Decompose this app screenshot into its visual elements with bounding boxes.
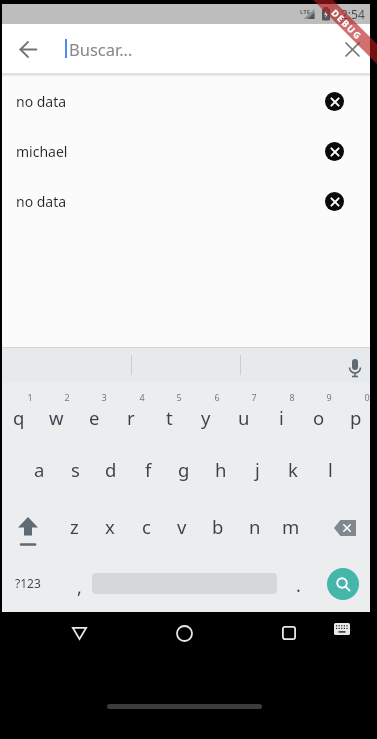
staticText: 4 <box>139 391 145 403</box>
button[interactable]: h <box>203 446 239 492</box>
staticText: 9 <box>326 391 332 403</box>
button[interactable]: v <box>164 503 200 549</box>
staticText: , <box>77 575 82 600</box>
staticText: no data <box>16 192 67 211</box>
staticText: 2 <box>64 391 70 403</box>
button[interactable]: u <box>226 394 262 440</box>
staticText: k <box>288 457 298 482</box>
staticText: m <box>282 514 300 539</box>
staticText: j <box>255 457 260 482</box>
button[interactable] <box>324 505 366 551</box>
staticText: g <box>178 457 190 482</box>
button[interactable]: d <box>93 446 129 492</box>
button[interactable]: s <box>57 446 93 492</box>
button[interactable]: m <box>273 503 309 549</box>
button[interactable] <box>267 611 311 655</box>
staticText: z <box>70 514 79 539</box>
staticText: Buscar... <box>69 38 133 60</box>
button[interactable]: no data <box>2 76 370 126</box>
staticText: c <box>142 514 151 539</box>
staticText: y <box>201 405 211 430</box>
button[interactable]: l <box>312 446 348 492</box>
staticText: 2:54 <box>341 6 365 22</box>
staticText: n <box>249 514 261 539</box>
staticText: LTE <box>300 8 311 16</box>
staticText: q <box>13 405 25 430</box>
staticText: t <box>166 405 173 430</box>
staticText: a <box>34 457 45 482</box>
button[interactable]: k <box>275 446 311 492</box>
button[interactable]: g <box>166 446 202 492</box>
button[interactable] <box>57 611 101 655</box>
staticText: u <box>238 405 250 430</box>
button[interactable]: y <box>188 394 224 440</box>
staticText: v <box>177 514 187 539</box>
staticText: w <box>49 405 64 430</box>
button[interactable]: f <box>130 446 166 492</box>
staticText: l <box>328 457 333 482</box>
button[interactable] <box>10 31 46 67</box>
staticText: 5 <box>176 391 182 403</box>
staticText: 6 <box>214 391 220 403</box>
staticText: x <box>105 514 115 539</box>
staticText: s <box>71 457 80 482</box>
button[interactable] <box>313 80 355 122</box>
button[interactable]: e <box>76 394 112 440</box>
button[interactable]: q <box>1 394 37 440</box>
button[interactable]: w <box>38 394 74 440</box>
button[interactable] <box>327 568 359 600</box>
button[interactable]: x <box>92 503 128 549</box>
button[interactable]: michael <box>2 126 370 176</box>
button[interactable]: a <box>21 446 57 492</box>
button[interactable]: t <box>151 394 187 440</box>
button[interactable]: j <box>239 446 275 492</box>
button[interactable]: c <box>128 503 164 549</box>
staticText: no data <box>16 92 67 111</box>
staticText: i <box>279 405 284 430</box>
staticText: michael <box>16 142 68 161</box>
button[interactable] <box>340 353 370 385</box>
staticText: b <box>212 514 224 539</box>
button[interactable] <box>8 509 48 555</box>
staticText: . <box>296 573 301 598</box>
button[interactable]: no data <box>2 176 370 226</box>
staticText: e <box>89 405 100 430</box>
button[interactable]: ?123 <box>6 561 50 605</box>
button[interactable]: p <box>338 394 374 440</box>
button[interactable]: z <box>56 503 92 549</box>
button[interactable] <box>322 609 362 649</box>
staticText: ?123 <box>15 575 41 591</box>
staticText: 7 <box>251 391 257 403</box>
staticText: 1 <box>27 391 33 403</box>
staticText: o <box>313 405 325 430</box>
button[interactable]: r <box>113 394 149 440</box>
button[interactable] <box>313 180 355 222</box>
staticText: 8 <box>289 391 295 403</box>
staticText: h <box>215 457 227 482</box>
button[interactable]: i <box>263 394 299 440</box>
button[interactable]: n <box>237 503 273 549</box>
staticText: p <box>350 405 362 430</box>
button[interactable]: o <box>301 394 337 440</box>
staticText: r <box>127 405 135 430</box>
staticText: DEBUG <box>329 6 365 42</box>
button[interactable]: b <box>200 503 236 549</box>
staticText: 0 <box>364 391 370 403</box>
button[interactable] <box>333 30 371 68</box>
button[interactable] <box>313 130 355 172</box>
staticText: f <box>145 457 152 482</box>
staticText: 3 <box>101 391 107 403</box>
staticText: d <box>105 457 117 482</box>
button[interactable] <box>162 611 206 655</box>
